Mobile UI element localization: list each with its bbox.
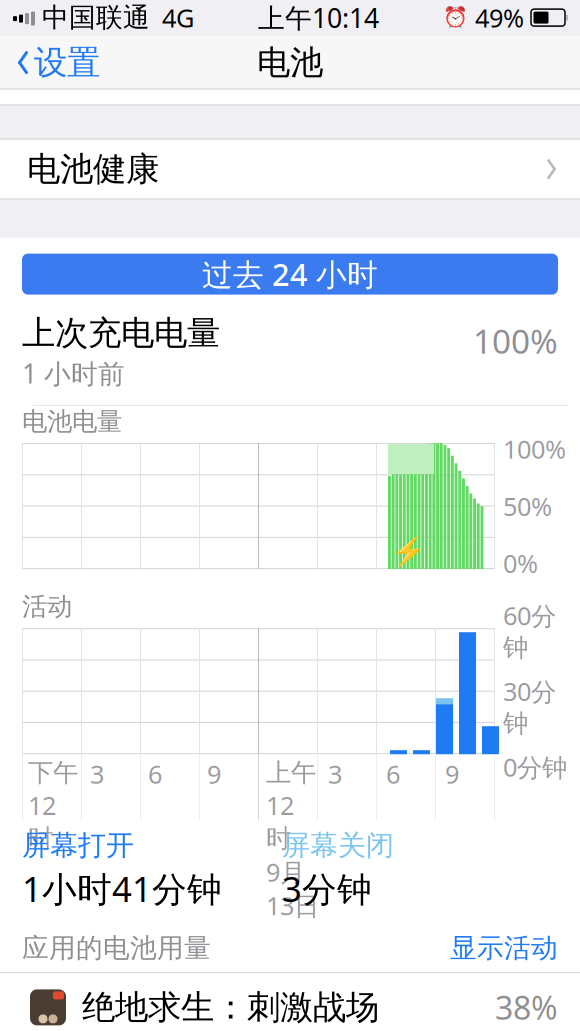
staticText: 50% bbox=[503, 489, 552, 523]
button[interactable]: 显示活动 bbox=[450, 932, 558, 964]
staticText: 6 bbox=[148, 757, 162, 791]
staticText: 3 bbox=[90, 757, 104, 791]
staticText: 过去 24 小时 bbox=[202, 254, 378, 294]
staticText: 下午12 bbox=[28, 757, 78, 822]
staticText: 活动 bbox=[22, 591, 72, 622]
staticText: 6 bbox=[386, 757, 400, 791]
staticText: 上午10:14 bbox=[258, 0, 379, 35]
staticText: 0% bbox=[503, 546, 538, 580]
staticText: 9月13日 bbox=[266, 855, 319, 922]
staticText: 设置 bbox=[34, 42, 100, 83]
staticText: 30分钟 bbox=[503, 674, 556, 739]
staticText: 电池电量 bbox=[22, 406, 122, 437]
staticText: 4G bbox=[162, 1, 194, 34]
staticText: 1小时41分钟 bbox=[22, 866, 222, 912]
staticText: 49% bbox=[475, 1, 524, 34]
staticText: 0分钟 bbox=[503, 750, 567, 784]
button[interactable]: 电池健康 bbox=[0, 140, 580, 199]
staticText: 100% bbox=[503, 432, 566, 466]
staticText: ⏰ bbox=[443, 6, 468, 29]
staticText: 中国联通 bbox=[42, 1, 150, 34]
staticText: 电池健康 bbox=[27, 149, 159, 189]
staticText: 时 bbox=[28, 823, 53, 854]
button[interactable]: 绝地求生：刺激战场 bbox=[0, 973, 580, 1031]
staticText: 9 bbox=[445, 757, 459, 791]
staticText: 3 bbox=[328, 757, 342, 791]
staticText: 上次充电电量 bbox=[22, 313, 220, 353]
staticText: 绝地求生：刺激战场 bbox=[82, 987, 379, 1028]
staticText: ⚡ bbox=[391, 535, 426, 567]
staticText: 38% bbox=[495, 986, 558, 1029]
staticText: 60分钟 bbox=[503, 599, 556, 663]
staticText: 3分钟 bbox=[282, 866, 372, 912]
staticText: 上午12 bbox=[266, 757, 316, 822]
staticText: 应用的电池用量 bbox=[22, 932, 211, 964]
staticText: 屏幕打开 bbox=[22, 828, 134, 863]
staticText: 屏幕关闭 bbox=[282, 828, 394, 863]
staticText: 100% bbox=[473, 319, 558, 363]
button[interactable]: 设置 bbox=[0, 36, 110, 90]
staticText: 9 bbox=[207, 757, 221, 791]
staticText: 时 bbox=[266, 823, 291, 854]
staticText: 1 小时前 bbox=[22, 356, 125, 391]
staticText: 电池 bbox=[257, 42, 323, 83]
staticText: 显示活动 bbox=[450, 932, 558, 964]
button[interactable]: 过去 24 小时 bbox=[22, 254, 558, 295]
